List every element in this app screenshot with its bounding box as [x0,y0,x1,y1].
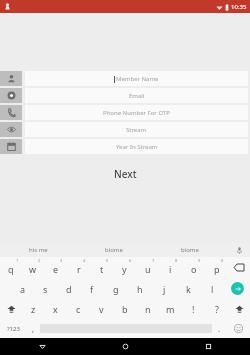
button[interactable]: 2 [22,257,44,278]
staticText: ?123 [7,325,20,333]
staticText: 9 [198,258,201,263]
staticText: ? [215,303,219,315]
button[interactable]: 8 [159,257,182,278]
button[interactable]: his me [0,243,76,257]
staticText: 8 [175,258,178,263]
staticText: ! [192,303,195,315]
staticText: 1 [16,258,19,263]
other: Email [7,91,16,100]
button[interactable]: Recents [167,338,250,355]
staticText: biome [181,246,199,254]
staticText: y [122,263,127,275]
button[interactable]: Home [84,338,167,355]
staticText: s [43,283,48,295]
other: Stream [7,125,16,134]
button[interactable]: Emoji [226,319,250,338]
button[interactable]: Shift [228,299,250,319]
button[interactable]: Voice input [228,243,250,257]
button[interactable]: Email [0,88,250,103]
button[interactable]: Shift [0,299,22,319]
staticText: 10:35 [231,3,247,11]
staticText: Email [129,92,145,100]
staticText: Year In Stream [116,143,158,151]
button[interactable]: j [152,278,176,299]
button[interactable]: Year in stream [0,139,250,154]
button[interactable]: 0 [205,257,228,278]
staticText: p [214,263,220,275]
other: Year in stream [7,142,16,151]
staticText: 2 [38,258,41,263]
staticText: Phone Number For OTP [103,109,170,117]
button[interactable]: n [136,299,159,319]
other: Member name [7,74,16,83]
button[interactable]: Backspace [228,257,250,278]
staticText: z [31,303,36,315]
button[interactable]: 7 [136,257,159,278]
staticText: 7 [152,258,155,263]
staticText: d [66,283,72,295]
button[interactable]: Comma [26,319,40,338]
button[interactable]: k [176,278,200,299]
button[interactable]: l [200,278,224,299]
staticText: t [100,263,104,275]
staticText: 5 [106,258,109,263]
button[interactable]: m [159,299,182,319]
button[interactable]: biome [76,243,152,257]
staticText: e [53,263,59,275]
button[interactable]: g [104,278,128,299]
button[interactable]: v [90,299,113,319]
staticText: 6 [129,258,132,263]
staticText: g [113,283,119,295]
staticText: m [166,303,175,315]
staticText: 0 [221,258,224,263]
button[interactable]: Stream [0,122,250,137]
button[interactable]: ! [182,299,205,319]
staticText: w [29,263,37,275]
staticText: Stream [126,126,147,134]
button[interactable]: 3 [44,257,67,278]
button[interactable]: 9 [182,257,205,278]
button[interactable]: Period [212,319,226,338]
button[interactable]: Back [0,338,84,355]
staticText: h [137,283,143,295]
button[interactable]: Next [0,164,250,184]
button[interactable]: a [11,278,34,299]
staticText: u [145,263,151,275]
staticText: j [163,283,166,295]
button[interactable]: 4 [67,257,90,278]
button[interactable]: z [22,299,44,319]
button[interactable]: x [44,299,67,319]
button[interactable]: f [80,278,104,299]
staticText: x [53,303,58,315]
staticText: Next [114,167,137,181]
staticText: Member Name [116,75,159,83]
button[interactable]: s [34,278,57,299]
button[interactable]: c [67,299,90,319]
button[interactable]: b [113,299,136,319]
staticText: c [76,303,81,315]
button[interactable]: Member name [0,71,250,86]
staticText: n [145,303,151,315]
button[interactable]: biome [152,243,228,257]
staticText: b [122,303,128,315]
button[interactable]: d [57,278,80,299]
staticText: 4 [83,258,86,263]
staticText: a [20,283,26,295]
button[interactable]: ?123 [0,319,26,338]
other: Phone number [7,108,16,117]
button[interactable]: 6 [113,257,136,278]
button[interactable]: Phone number [0,105,250,120]
staticText: k [186,283,191,295]
staticText: r [77,263,81,275]
button[interactable]: ? [205,299,228,319]
staticText: i [169,263,172,275]
button[interactable]: 5 [90,257,113,278]
button[interactable]: h [128,278,152,299]
button[interactable]: 1 [0,257,22,278]
staticText: , [32,323,35,334]
staticText: his me [29,246,48,254]
staticText: 3 [60,258,63,263]
button[interactable]: Enter [224,278,250,299]
staticText: . [218,323,221,334]
